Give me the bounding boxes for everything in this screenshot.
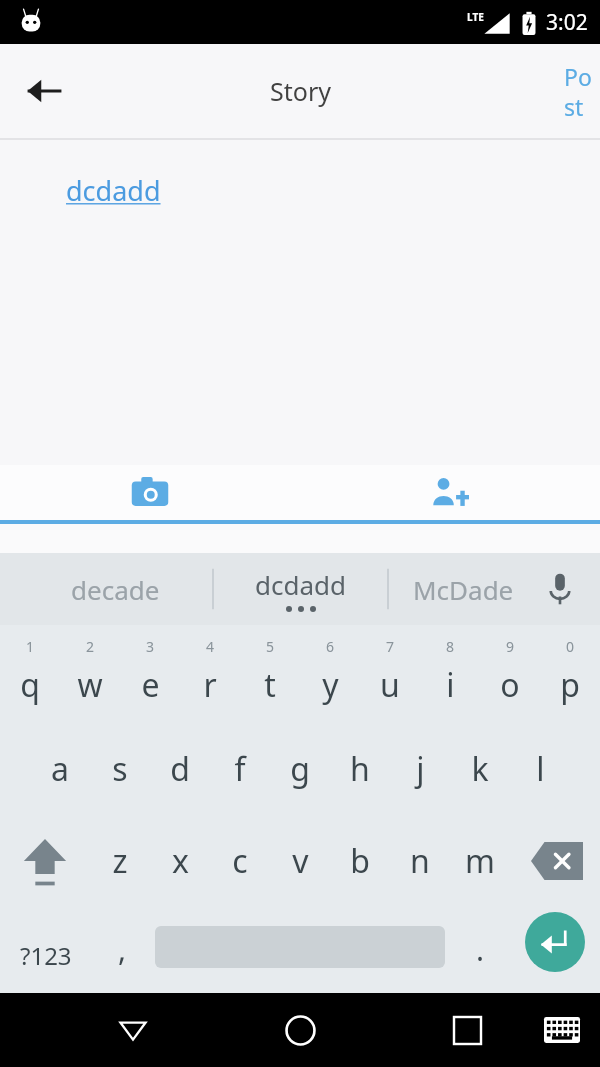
staticText: j <box>416 747 425 791</box>
button[interactable]: z <box>90 819 150 903</box>
staticText: x <box>172 839 189 883</box>
button[interactable]: v <box>270 819 330 903</box>
staticText: t <box>264 663 276 707</box>
staticText: 2 <box>86 637 95 656</box>
button[interactable]: d <box>150 727 210 811</box>
staticText: f <box>234 747 246 791</box>
button[interactable]: 2 <box>60 635 120 719</box>
button[interactable]: 3 <box>120 635 180 719</box>
staticText: n <box>410 839 430 883</box>
button[interactable]: Voice input <box>530 559 590 619</box>
button[interactable]: 7 <box>360 635 420 719</box>
button[interactable]: 4 <box>180 635 240 719</box>
button[interactable]: Keyboard layout <box>532 1000 592 1060</box>
staticText: decade <box>71 572 160 607</box>
staticText: i <box>446 663 455 707</box>
staticText: a <box>51 747 69 791</box>
staticText: , <box>118 929 127 970</box>
button[interactable]: Backspace <box>520 819 594 903</box>
staticText: r <box>203 663 217 707</box>
button[interactable]: f <box>210 727 270 811</box>
staticText: k <box>471 747 489 791</box>
button[interactable]: m <box>450 819 510 903</box>
staticText: m <box>465 839 495 883</box>
staticText: ?123 <box>20 939 72 972</box>
staticText: p <box>560 663 580 707</box>
button[interactable]: 8 <box>420 635 480 719</box>
staticText: 8 <box>446 637 455 656</box>
staticText: h <box>350 747 370 791</box>
button[interactable]: b <box>330 819 390 903</box>
staticText: c <box>232 839 248 883</box>
staticText: Story <box>270 74 331 108</box>
button[interactable]: 1 <box>0 635 60 719</box>
button[interactable]: , <box>92 913 152 997</box>
staticText: z <box>112 839 128 883</box>
button[interactable]: Home <box>265 995 335 1065</box>
staticText: 4 <box>206 637 215 656</box>
button[interactable]: Enter <box>525 912 585 972</box>
button[interactable]: Back <box>10 57 78 125</box>
button[interactable]: c <box>210 819 270 903</box>
staticText: 7 <box>386 637 395 656</box>
staticText: dcdadd <box>255 567 347 602</box>
staticText: 9 <box>506 637 515 656</box>
button[interactable]: Shift <box>6 819 84 903</box>
staticText: u <box>380 663 400 707</box>
staticText: w <box>77 663 103 707</box>
staticText: s <box>112 747 128 791</box>
staticText: l <box>536 747 545 791</box>
staticText: g <box>290 747 310 791</box>
button[interactable]: l <box>510 727 570 811</box>
button[interactable]: decade <box>20 553 210 625</box>
button[interactable]: k <box>450 727 510 811</box>
button[interactable]: Recent apps <box>432 995 502 1065</box>
button[interactable]: 6 <box>300 635 360 719</box>
staticText: o <box>500 663 520 707</box>
button[interactable]: . <box>452 913 508 997</box>
button[interactable]: 5 <box>240 635 300 719</box>
button[interactable]: McDade <box>388 553 538 625</box>
staticText: . <box>476 929 485 970</box>
button[interactable]: Hide keyboard <box>98 995 168 1065</box>
button[interactable]: n <box>390 819 450 903</box>
staticText: 6 <box>326 637 335 656</box>
staticText: d <box>170 747 190 791</box>
button[interactable]: Tag people <box>410 465 490 520</box>
staticText: McDade <box>413 572 514 607</box>
button[interactable]: s <box>90 727 150 811</box>
button[interactable]: Post <box>564 44 600 138</box>
staticText: 0 <box>566 637 575 656</box>
staticText: 3:02 <box>546 8 588 37</box>
button[interactable]: j <box>390 727 450 811</box>
button[interactable]: ?123 <box>4 913 88 997</box>
button[interactable]: a <box>30 727 90 811</box>
button[interactable]: x <box>150 819 210 903</box>
button[interactable]: 0 <box>540 635 600 719</box>
staticText: e <box>141 663 160 707</box>
button[interactable]: g <box>270 727 330 811</box>
button[interactable]: dcdadd <box>213 553 388 625</box>
button[interactable]: 9 <box>480 635 540 719</box>
staticText: b <box>350 839 370 883</box>
staticText: LTE <box>467 10 484 24</box>
staticText: y <box>322 663 339 707</box>
staticText: 1 <box>26 637 35 656</box>
staticText: v <box>292 839 309 883</box>
staticText: 3 <box>146 637 155 656</box>
button[interactable]: h <box>330 727 390 811</box>
staticText: q <box>20 663 40 707</box>
staticText: dcdadd <box>66 172 161 209</box>
staticText: Post <box>564 61 600 122</box>
staticText: 5 <box>266 637 275 656</box>
button[interactable]: Take photo <box>110 465 190 520</box>
